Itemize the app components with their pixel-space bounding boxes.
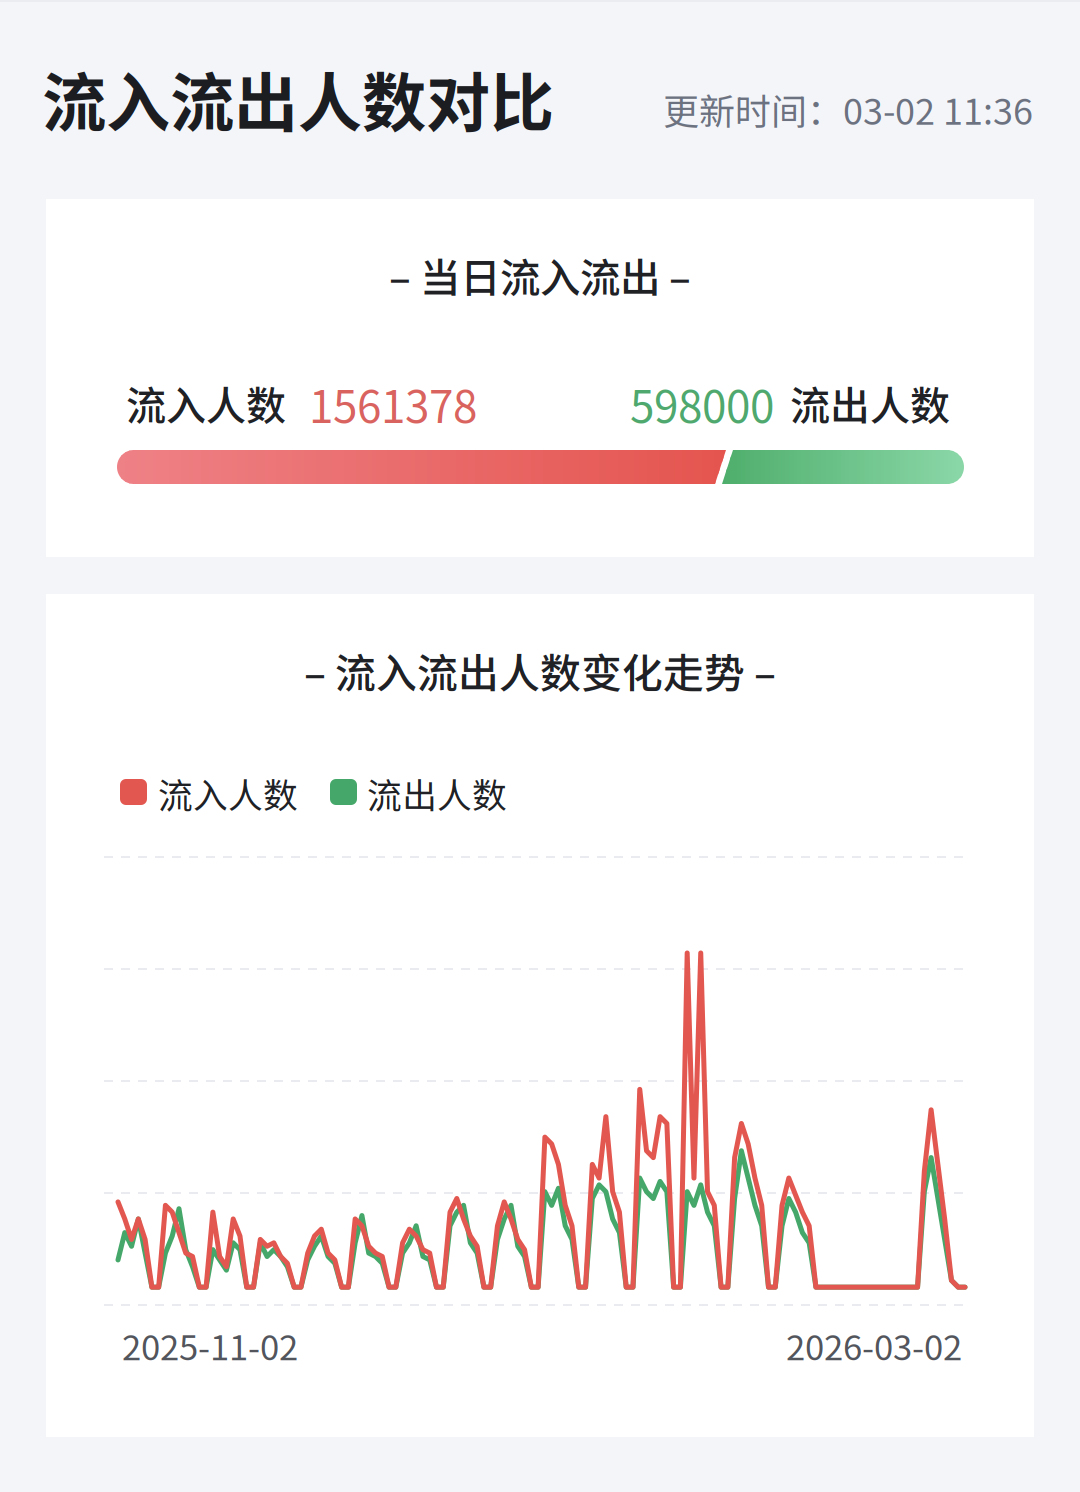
staticText: 流出人数: [367, 768, 507, 818]
staticText: 2026-03-02: [786, 1320, 962, 1370]
staticText: 更新时间：03-02 11:36: [663, 83, 1033, 135]
button[interactable]: – 当日流入流出 –: [46, 199, 1034, 557]
staticText: 598000: [630, 372, 774, 436]
staticText: 1561378: [309, 372, 477, 436]
staticText: – 流入流出人数变化走势 –: [304, 641, 776, 700]
staticText: 流入人数: [158, 768, 298, 818]
button[interactable]: – 流入流出人数变化走势 –: [46, 594, 1034, 1437]
staticText: 流出人数: [790, 374, 950, 432]
staticText: 流入流出人数对比: [42, 52, 554, 145]
staticText: 2025-11-02: [122, 1320, 298, 1370]
staticText: 流入人数: [126, 374, 286, 432]
staticText: – 当日流入流出 –: [389, 246, 691, 304]
